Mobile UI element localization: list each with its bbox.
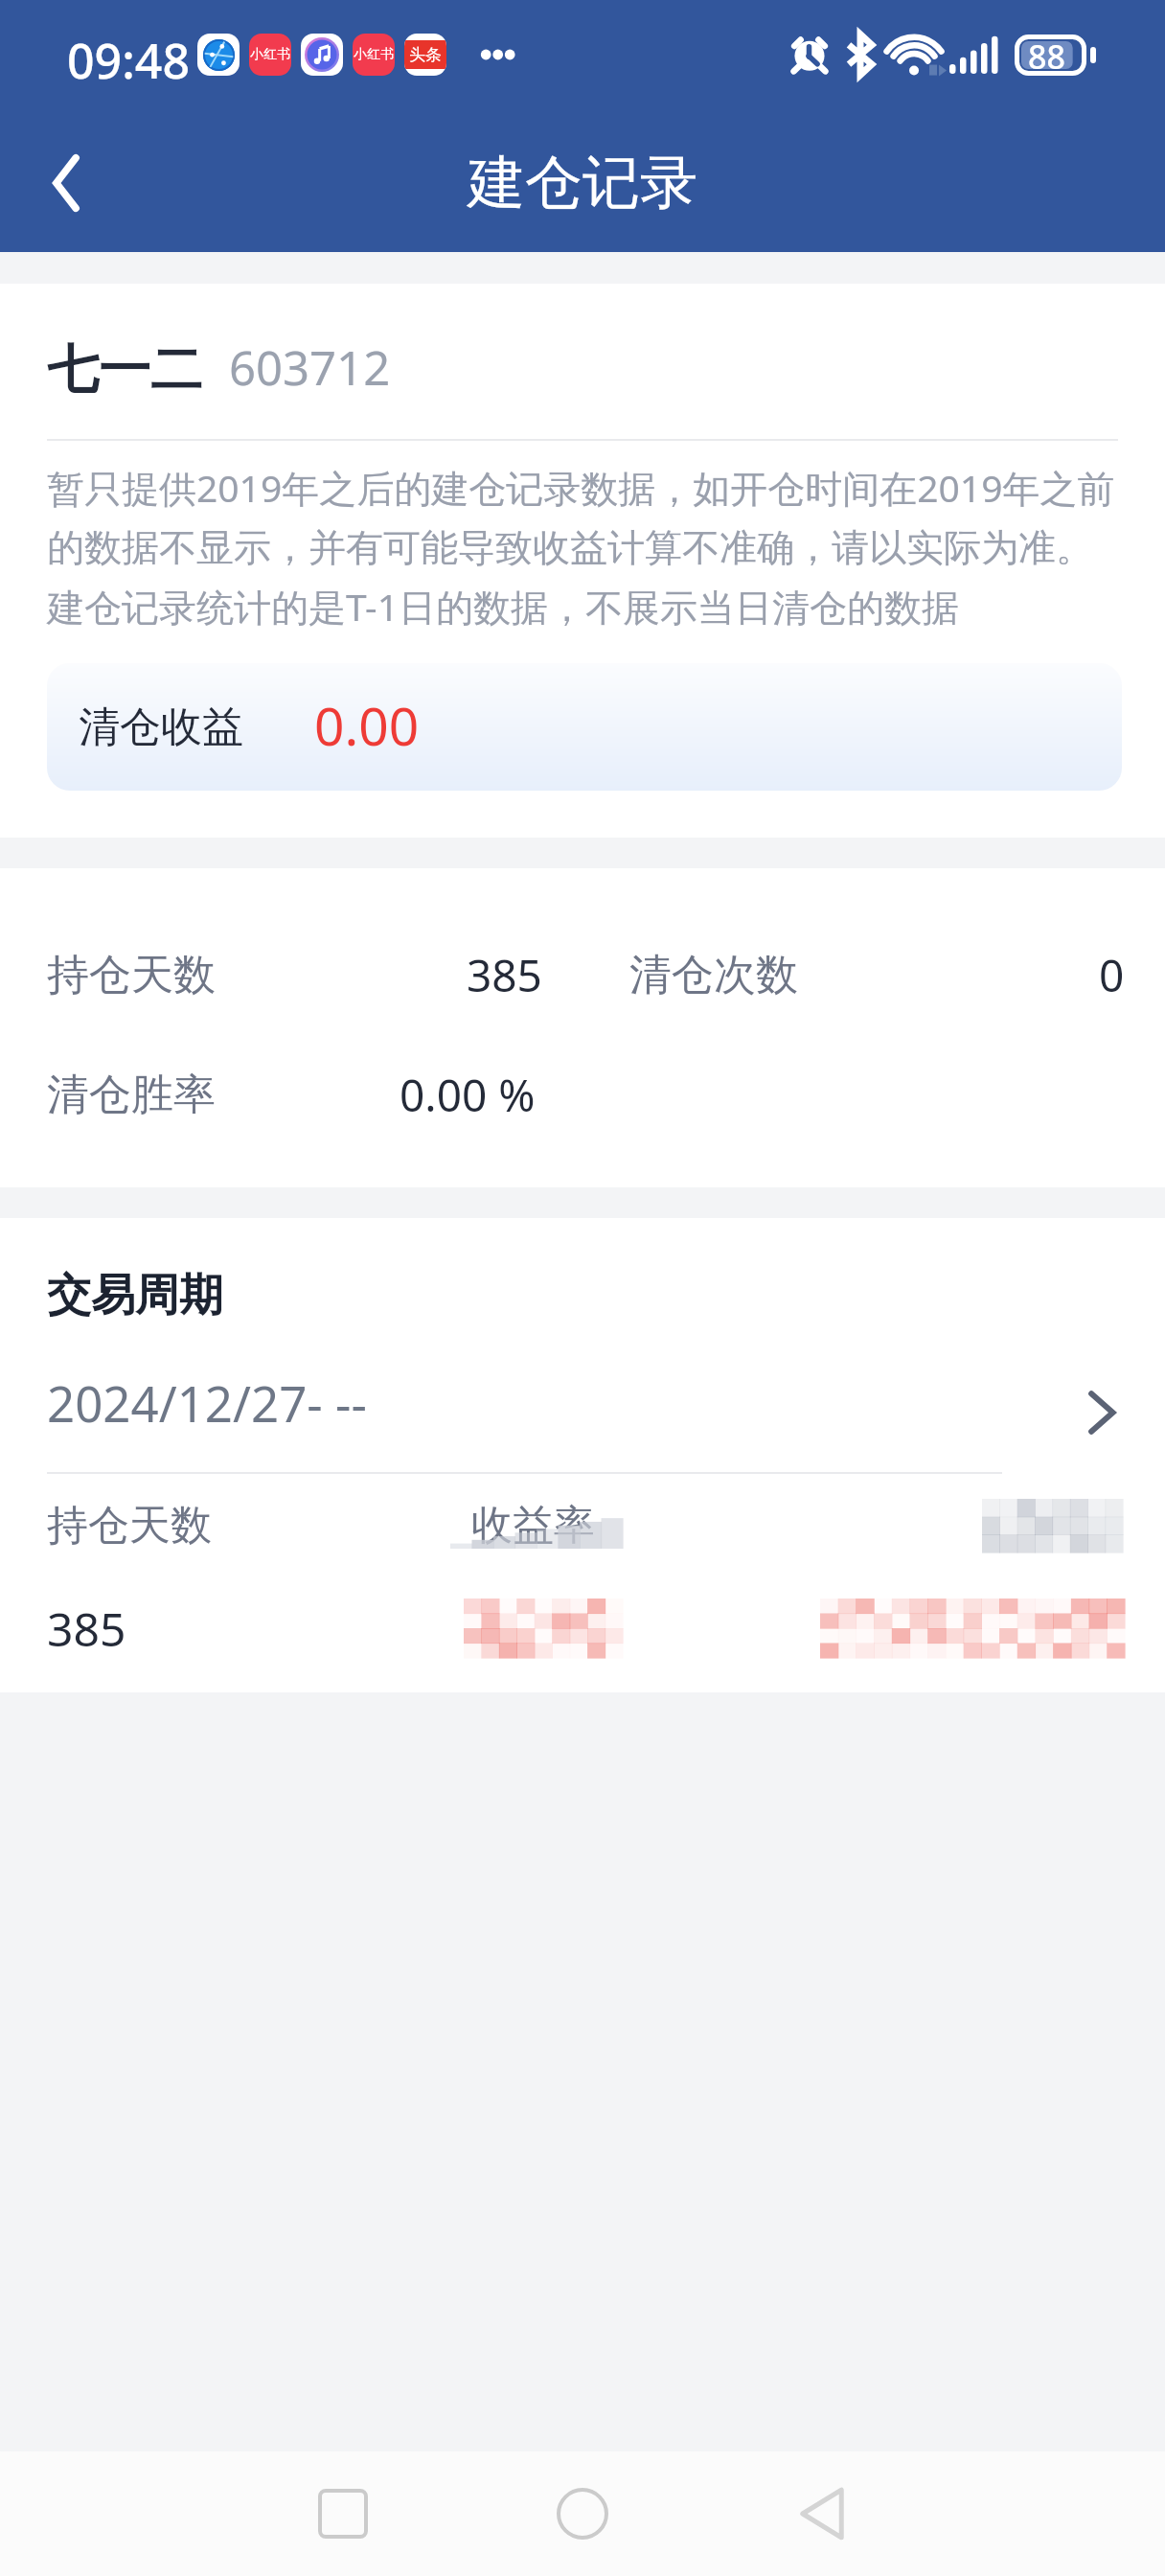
staticText: 收益率 — [471, 1500, 595, 1552]
staticText: 88 — [1028, 34, 1065, 76]
staticText: 七一二 — [47, 337, 202, 402]
staticText: 持仓天数 — [47, 1500, 212, 1552]
button[interactable]: Back — [23, 137, 115, 229]
staticText: 建仓记录 — [468, 147, 697, 219]
staticText: 09:48 — [67, 28, 190, 81]
button[interactable]: Recents — [223, 2451, 463, 2576]
staticText: 交易周期 — [47, 1268, 223, 1323]
staticText: 0 — [1099, 945, 1125, 1005]
button[interactable]: 清仓收益 — [47, 663, 1122, 791]
staticText: 603712 — [229, 335, 391, 400]
button[interactable]: 2024/12/27- -- — [0, 1362, 1165, 1442]
staticText: 0.00 — [314, 689, 420, 761]
staticText: 2024/12/27- -- — [47, 1369, 367, 1436]
staticText: 清仓胜率 — [47, 1069, 216, 1121]
staticText: 清仓次数 — [629, 949, 798, 1001]
staticText: 持仓天数 — [47, 949, 216, 1001]
staticText: 小红书 — [250, 46, 290, 63]
staticText: 小红书 — [354, 46, 394, 63]
staticText: 头条 — [409, 45, 442, 65]
staticText: 清仓收益 — [79, 701, 243, 753]
staticText: 385 — [47, 1598, 126, 1660]
button[interactable]: Back — [702, 2451, 942, 2576]
button[interactable]: Home — [463, 2451, 702, 2576]
staticText: 385 — [467, 945, 542, 1005]
staticText: 暂只提供2019年之后的建仓记录数据，如开仓时间在2019年之前的数据不显示，并… — [47, 462, 1118, 632]
staticText: 0.00 % — [400, 1065, 536, 1125]
